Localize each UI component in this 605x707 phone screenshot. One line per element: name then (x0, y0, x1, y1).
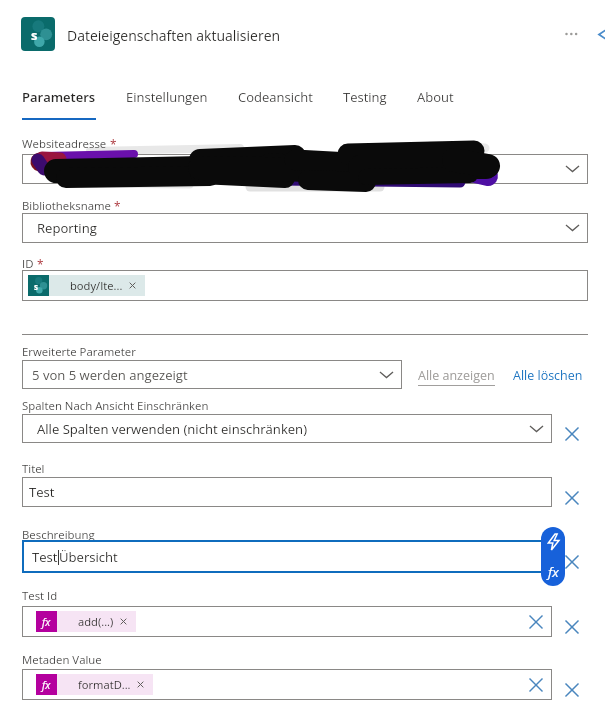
staticText: body/Ite... (70, 278, 123, 293)
button[interactable]: SharePoint (21, 17, 55, 51)
button[interactable]: Add dynamic content (541, 527, 565, 557)
staticText: Alle löschen (513, 367, 583, 384)
button[interactable]: Clear value (526, 675, 546, 695)
button[interactable]: Alle Spalten verwenden (nicht einschränk… (22, 414, 552, 443)
staticText: 5 von 5 werden angezeigt (32, 366, 188, 384)
button[interactable]: Delete Test Id (561, 616, 583, 638)
staticText: Testing (343, 88, 387, 106)
staticText: fx (42, 678, 51, 692)
staticText: Beschreibung (22, 527, 95, 543)
staticText: Dateieigenschaften aktualisieren (67, 26, 281, 45)
button[interactable]: Parameters (22, 83, 96, 120)
button[interactable]: About (417, 83, 454, 120)
button[interactable]: Delete Titel (561, 487, 583, 509)
staticText: * (111, 198, 121, 214)
staticText: Websiteadresse (22, 136, 107, 152)
button[interactable]: Einstellungen (126, 83, 208, 120)
button[interactable]: Delete Spalten Nach Ansicht Einschränken (561, 423, 583, 445)
staticText: s (34, 281, 38, 292)
staticText: Spalten Nach Ansicht Einschränken (22, 398, 209, 414)
staticText: Titel (22, 461, 45, 477)
staticText: Test (32, 548, 58, 566)
staticText: Parameters (22, 88, 96, 106)
staticText: ID (22, 256, 34, 272)
button[interactable]: 5 von 5 werden angezeigt (22, 360, 402, 389)
staticText: add(...) (78, 614, 114, 629)
staticText: Übersicht (59, 548, 118, 566)
button[interactable]: Test (22, 540, 552, 573)
button[interactable]: Testing (343, 83, 387, 120)
button[interactable]: Collapse panel (594, 21, 605, 43)
button[interactable]: Test (22, 477, 552, 507)
staticText: Bibliotheksname (22, 198, 111, 214)
button[interactable]: Delete Beschreibung (561, 551, 583, 573)
staticText: Codeansicht (238, 88, 313, 106)
button[interactable]: Alle löschen (513, 367, 583, 384)
button[interactable]: Reporting (22, 213, 588, 243)
button[interactable]: More commands (559, 22, 583, 46)
button[interactable]: fx (22, 669, 552, 700)
button[interactable]: Delete Metaden Value (561, 679, 583, 701)
staticText: * (107, 136, 117, 152)
staticText: About (417, 88, 454, 106)
staticText: Alle anzeigen (418, 367, 495, 384)
staticText: fx (548, 563, 559, 581)
button[interactable]: Codeansicht (238, 83, 313, 120)
staticText: Erweiterte Parameter (22, 344, 136, 360)
button[interactable]: Add an expression (541, 557, 565, 586)
button[interactable]: s (22, 270, 588, 301)
button[interactable] (22, 154, 588, 184)
staticText: Test (29, 483, 55, 501)
staticText: * (34, 256, 44, 272)
staticText: Einstellungen (126, 88, 208, 106)
button[interactable]: Clear value (526, 612, 546, 632)
staticText: s (31, 26, 38, 44)
button[interactable]: fx (22, 606, 552, 637)
staticText: Test Id (22, 588, 58, 604)
staticText: fx (42, 615, 51, 629)
staticText: Metaden Value (22, 652, 102, 668)
staticText: formatD... (78, 677, 131, 692)
button[interactable]: Alle anzeigen (418, 367, 495, 386)
staticText: Alle Spalten verwenden (nicht einschränk… (37, 420, 308, 438)
staticText: Reporting (37, 219, 97, 237)
